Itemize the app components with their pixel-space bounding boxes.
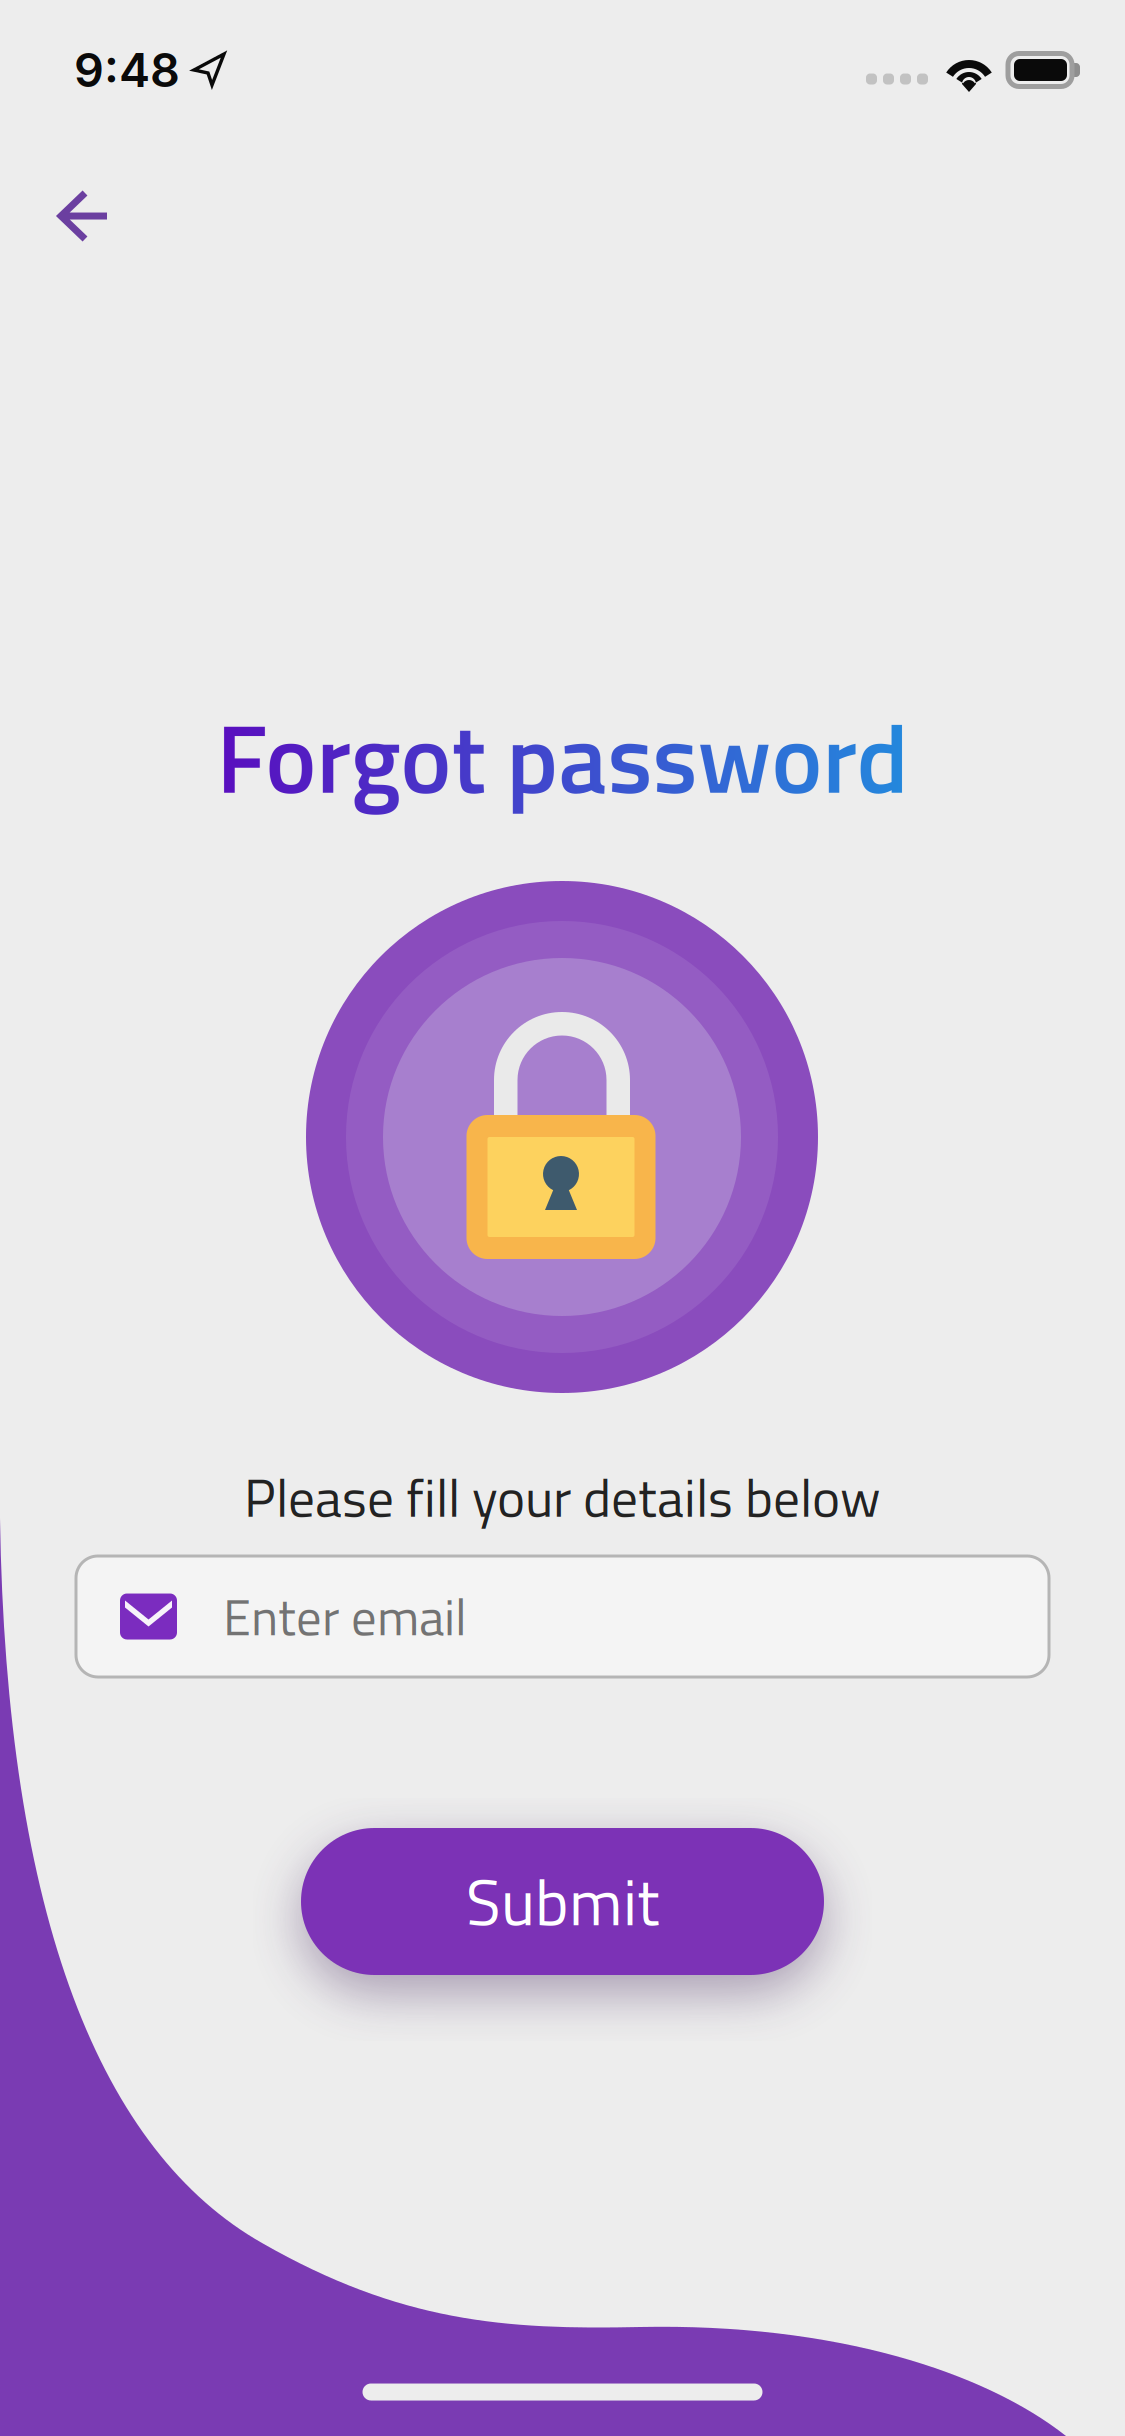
staticText: Submit — [466, 1853, 659, 1950]
button[interactable]: Enter email — [76, 1556, 1049, 1677]
staticText: Please fill your details below — [244, 1456, 881, 1537]
staticText: Enter email — [223, 1578, 467, 1655]
button[interactable]: Submit — [301, 1828, 824, 1975]
staticText: 9:48 — [74, 42, 180, 98]
button[interactable]: Back — [29, 161, 139, 271]
